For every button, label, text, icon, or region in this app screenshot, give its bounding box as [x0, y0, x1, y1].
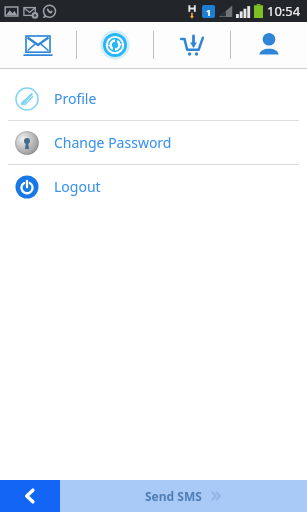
- button[interactable]: Cart: [154, 22, 230, 68]
- staticText: 10:54: [267, 2, 301, 20]
- button[interactable]: Back: [0, 480, 60, 512]
- staticText: Logout: [54, 177, 101, 196]
- staticText: Profile: [54, 89, 97, 108]
- staticText: Send SMS: [145, 488, 202, 504]
- button[interactable]: Refresh: [77, 22, 153, 68]
- button[interactable]: Logout: [0, 165, 307, 208]
- button[interactable]: Mail: [0, 22, 76, 68]
- button[interactable]: Change Password: [0, 121, 307, 164]
- button[interactable]: Profile: [0, 77, 307, 120]
- button[interactable]: Send SMS: [60, 480, 307, 512]
- staticText: 1: [206, 6, 212, 18]
- button[interactable]: Account: [231, 22, 307, 68]
- staticText: Change Password: [54, 133, 172, 152]
